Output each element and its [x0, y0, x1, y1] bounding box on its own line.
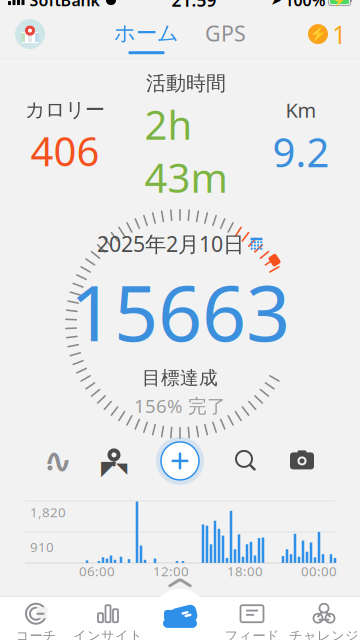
staticText: ⚡	[309, 26, 327, 42]
button[interactable]: Camera	[274, 449, 330, 473]
staticText: GPS	[205, 19, 246, 47]
staticText: 15663	[70, 260, 290, 363]
staticText: 活動時間	[146, 71, 226, 96]
staticText: チャレンジ	[289, 628, 359, 640]
staticText: 00:00	[301, 562, 337, 580]
staticText: ⚡	[333, 0, 346, 6]
button[interactable]: Places	[86, 447, 142, 475]
staticText: フィード	[224, 628, 279, 640]
button[interactable]: GPS	[205, 19, 246, 55]
staticText: 2025年2月10日	[97, 229, 244, 258]
staticText: SoftBank	[29, 0, 99, 11]
staticText: コーチ	[15, 628, 56, 640]
button[interactable]: Activity	[150, 587, 210, 640]
button[interactable]: Route	[30, 448, 86, 474]
staticText: 100%	[284, 0, 325, 11]
staticText: ◤	[101, 457, 116, 479]
staticText: ◥	[116, 460, 127, 476]
staticText: ➤	[270, 0, 281, 8]
staticText: ∿	[43, 441, 72, 480]
staticText: 21:59	[171, 0, 216, 12]
staticText: ホーム	[114, 20, 179, 46]
staticText: 12:00	[153, 562, 189, 580]
button[interactable]: ホーム	[114, 20, 179, 54]
button[interactable]: Add	[142, 436, 218, 486]
button[interactable]: コーチ	[0, 597, 72, 640]
staticText: Km	[285, 97, 316, 123]
staticText: 1	[332, 17, 346, 51]
button[interactable]: チャレンジ	[288, 597, 360, 640]
button[interactable]: Map	[14, 18, 46, 50]
button[interactable]: Streak 1	[308, 17, 346, 51]
button[interactable]: Expand	[150, 572, 210, 594]
staticText: 1,820	[30, 503, 66, 521]
button[interactable]: 2025年2月10日	[97, 229, 263, 258]
staticText: インサイト	[73, 628, 143, 640]
staticText: 06:00	[79, 562, 115, 580]
staticText: 910	[30, 538, 54, 556]
staticText: 18:00	[227, 562, 263, 580]
staticText: 156% 完了	[134, 393, 226, 418]
button[interactable]: フィード	[216, 597, 288, 640]
staticText: 目標達成	[142, 367, 218, 389]
staticText: 9.2	[272, 125, 329, 178]
staticText: カロリー	[25, 98, 105, 122]
button[interactable]: インサイト	[72, 597, 144, 640]
button[interactable]: Search	[218, 448, 274, 474]
staticText: 406	[30, 124, 99, 177]
staticText: 2h 43m	[144, 98, 227, 204]
